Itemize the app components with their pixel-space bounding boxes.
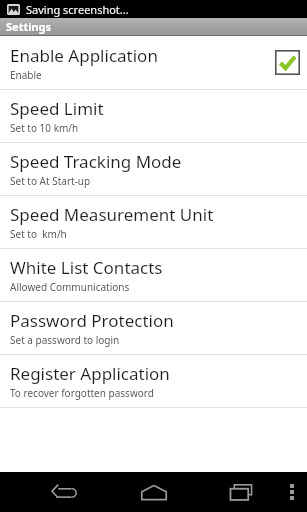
staticText: Register Application bbox=[10, 362, 170, 385]
button[interactable]: Back bbox=[41, 472, 85, 512]
staticText: Enable Application bbox=[10, 44, 158, 67]
staticText: Enable bbox=[10, 68, 42, 82]
staticText: Set to 10 km/h bbox=[10, 121, 79, 135]
button[interactable]: Speed Limit bbox=[0, 90, 307, 143]
staticText: Speed Measurement Unit bbox=[10, 203, 214, 226]
staticText: Saving screenshot... bbox=[26, 2, 129, 17]
staticText: Set a password to login bbox=[10, 333, 120, 347]
button[interactable]: Enable Application checkbox bbox=[275, 50, 300, 75]
button[interactable]: Enable Application bbox=[0, 36, 307, 90]
staticText: Set to At Start-up bbox=[10, 174, 91, 188]
staticText: Allowed Communications bbox=[10, 280, 130, 294]
staticText: To recover forgotten password bbox=[10, 386, 154, 400]
button[interactable]: Speed Tracking Mode bbox=[0, 143, 307, 196]
staticText: Password Protection bbox=[10, 309, 174, 332]
button[interactable]: Register Application bbox=[0, 355, 307, 408]
staticText: Speed Limit bbox=[10, 97, 104, 120]
staticText: Set to km/h bbox=[10, 227, 67, 241]
button[interactable]: Home bbox=[132, 472, 176, 512]
staticText: Speed Tracking Mode bbox=[10, 150, 182, 173]
button[interactable]: More options bbox=[281, 472, 303, 512]
button[interactable]: Password Protection bbox=[0, 302, 307, 355]
staticText: White List Contacts bbox=[10, 256, 163, 279]
button[interactable]: White List Contacts bbox=[0, 249, 307, 302]
button[interactable]: Recent apps bbox=[220, 472, 264, 512]
button[interactable]: Speed Measurement Unit bbox=[0, 196, 307, 249]
staticText: Settings bbox=[6, 19, 52, 34]
